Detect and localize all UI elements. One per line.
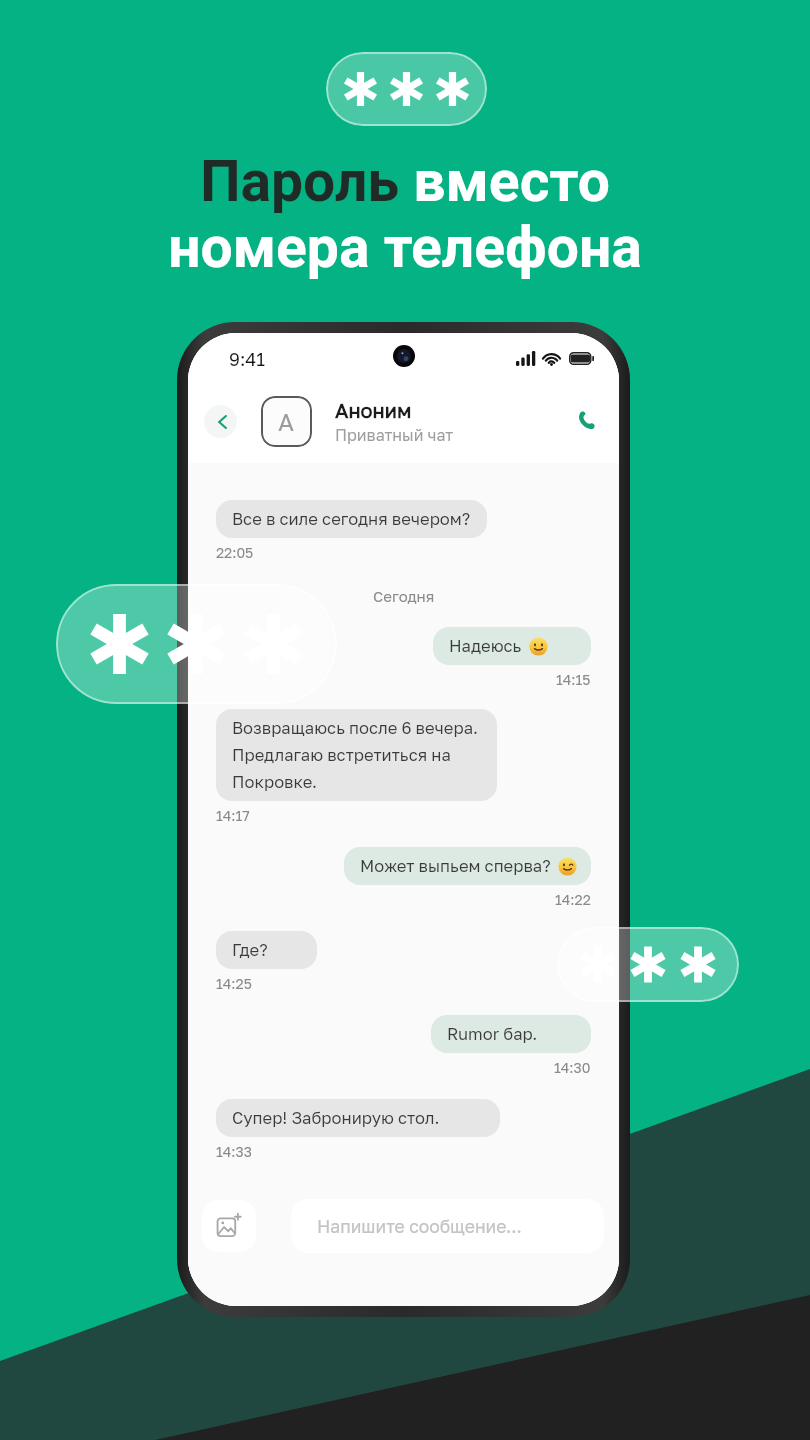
staticText: 14:33 <box>216 1143 252 1160</box>
button[interactable]: Call <box>564 399 608 443</box>
staticText: 14:22 <box>555 891 591 908</box>
button[interactable]: Надеюсь <box>433 627 591 665</box>
button[interactable]: Rumor бар. <box>431 1015 591 1053</box>
staticText: Возвращаюсь после 6 вечера. Предлагаю вс… <box>232 718 487 792</box>
button[interactable]: Back <box>204 405 237 438</box>
staticText: 14:30 <box>554 1059 591 1076</box>
staticText: 14:17 <box>216 807 250 824</box>
staticText: Rumor бар. <box>447 1024 538 1044</box>
staticText: Надеюсь <box>449 636 522 656</box>
staticText: 14:25 <box>216 975 252 992</box>
staticText: 9:41 <box>229 348 265 370</box>
button[interactable]: Может выпьем сперва? <box>344 847 591 885</box>
staticText: Где? <box>232 940 268 960</box>
staticText: Сегодня <box>373 587 435 605</box>
button[interactable]: Где? <box>216 931 317 969</box>
staticText: 22:05 <box>216 544 254 561</box>
staticText: Пароль вместо номера телефона <box>168 148 642 281</box>
button[interactable]: Attach image <box>202 1200 256 1252</box>
staticText: Приватный чат <box>335 425 454 444</box>
button[interactable]: Напишите сообщение... <box>291 1199 604 1253</box>
staticText: Может выпьем сперва? <box>360 856 551 876</box>
staticText: 14:15 <box>556 671 591 688</box>
staticText: Напишите сообщение... <box>317 1216 522 1237</box>
staticText: A <box>278 407 295 436</box>
staticText: Супер! Забронирую стол. <box>232 1108 440 1128</box>
button[interactable]: A <box>261 396 312 447</box>
staticText: Аноним <box>335 398 412 422</box>
staticText: Все в силе сегодня вечером? <box>232 509 471 529</box>
button[interactable]: Все в силе сегодня вечером? <box>216 500 487 538</box>
button[interactable]: Супер! Забронирую стол. <box>216 1099 500 1137</box>
button[interactable]: Возвращаюсь после 6 вечера. Предлагаю вс… <box>216 709 497 801</box>
